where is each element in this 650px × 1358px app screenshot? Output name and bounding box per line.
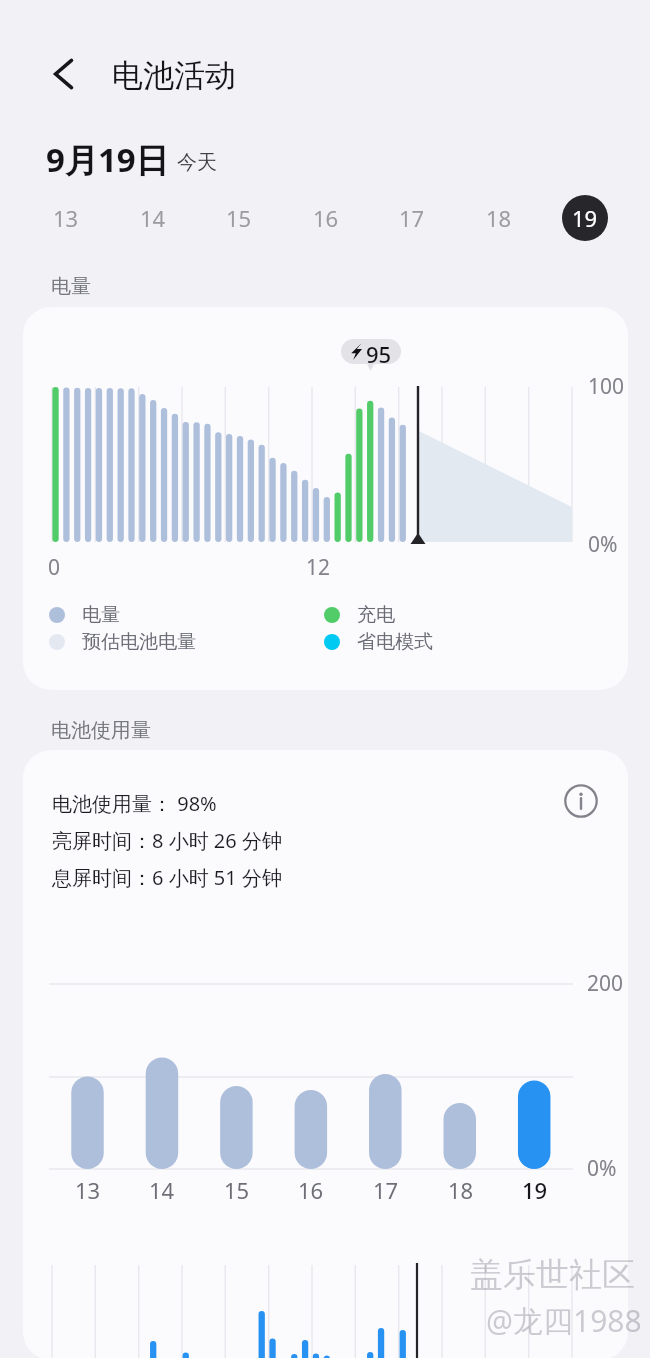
staticText: 12 <box>306 553 331 582</box>
staticText: 9月19日 <box>46 137 169 182</box>
staticText: 息屏时间：6 小时 51 分钟 <box>52 864 282 891</box>
staticText: 预估电池电量 <box>82 630 196 654</box>
staticText: 电池活动 <box>112 56 236 95</box>
staticText: 14 <box>149 1175 175 1205</box>
button[interactable]: 13 <box>33 185 99 251</box>
button[interactable]: 100 <box>23 307 628 690</box>
staticText: 95 <box>366 339 392 364</box>
button[interactable]: 充电 <box>324 601 524 629</box>
button[interactable]: 电量 <box>49 601 324 629</box>
staticText: 电量 <box>82 603 120 627</box>
staticText: 16 <box>313 203 339 233</box>
staticText: 13 <box>75 1175 101 1205</box>
staticText: 17 <box>399 203 425 233</box>
staticText: 100 <box>588 372 625 401</box>
staticText: @龙四1988 <box>486 1300 642 1341</box>
button[interactable]: 15 <box>206 185 272 251</box>
button[interactable]: 省电模式 <box>324 628 524 656</box>
staticText: 省电模式 <box>357 630 433 654</box>
button[interactable]: 18 <box>466 185 532 251</box>
staticText: 今天 <box>177 150 217 175</box>
staticText: 电量 <box>51 274 91 299</box>
staticText: 14 <box>140 203 166 233</box>
staticText: 18 <box>486 203 512 233</box>
button[interactable]: Info <box>558 778 604 824</box>
staticText: 0% <box>588 530 618 559</box>
button[interactable]: 14 <box>120 185 186 251</box>
staticText: 15 <box>226 203 252 233</box>
staticText: 19 <box>572 203 598 233</box>
staticText: 200 <box>587 969 624 998</box>
staticText: 16 <box>298 1175 324 1205</box>
staticText: 18 <box>448 1175 474 1205</box>
staticText: 电池使用量 <box>51 718 151 743</box>
button[interactable]: 预估电池电量 <box>49 628 324 656</box>
button[interactable]: 17 <box>379 185 445 251</box>
staticText: 电池使用量： 98% <box>52 790 217 817</box>
staticText: 13 <box>53 203 79 233</box>
staticText: 亮屏时间：8 小时 26 分钟 <box>52 827 282 854</box>
staticText: 充电 <box>357 603 395 627</box>
staticText: 17 <box>373 1175 399 1205</box>
staticText: 0% <box>587 1154 617 1183</box>
staticText: 15 <box>224 1175 250 1205</box>
button[interactable]: 19 <box>552 185 618 251</box>
button[interactable]: 16 <box>293 185 359 251</box>
staticText: 0 <box>48 553 61 582</box>
staticText: 盖乐世社区 <box>470 1254 635 1296</box>
staticText: 19 <box>522 1175 548 1205</box>
button[interactable]: Back <box>41 50 89 98</box>
